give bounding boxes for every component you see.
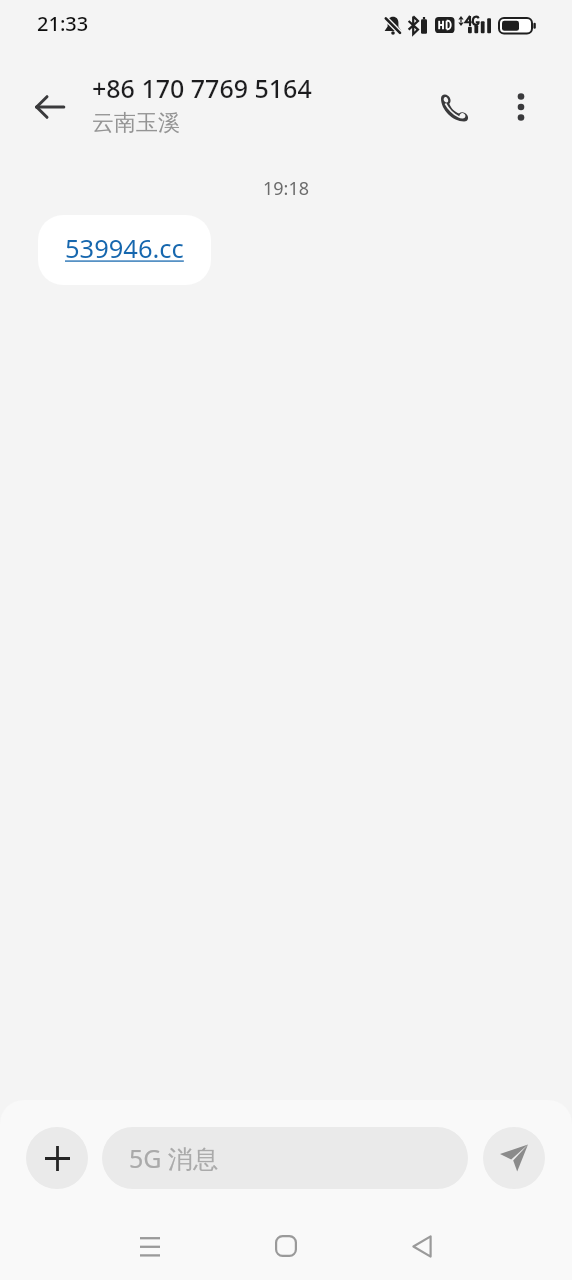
button[interactable]: Home [254, 1214, 318, 1278]
button[interactable]: Send [483, 1127, 545, 1189]
button[interactable]: Back [390, 1214, 454, 1278]
staticText: 19:18 [263, 176, 310, 201]
staticText: 云南玉溪 [92, 109, 180, 137]
button[interactable]: More options [497, 83, 545, 131]
staticText: 21:33 [37, 10, 89, 37]
button[interactable]: Call [430, 83, 478, 131]
button[interactable]: Recent apps [118, 1214, 182, 1278]
button[interactable]: Back [26, 83, 74, 131]
button[interactable]: 5G 消息 [102, 1127, 468, 1189]
staticText: 5G 消息 [129, 1141, 219, 1175]
staticText: +86 170 7769 5164 [92, 71, 312, 105]
staticText: 539946.cc [65, 231, 184, 266]
button[interactable]: 539946.cc [38, 215, 211, 285]
button[interactable]: Add attachment [26, 1127, 88, 1189]
